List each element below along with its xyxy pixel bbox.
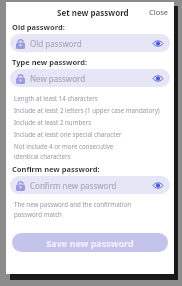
staticText: Include at least 2 numbers (14, 118, 92, 126)
staticText: Close (149, 7, 169, 17)
staticText: The new password and the confirmation (14, 200, 132, 208)
button[interactable]: Save new password (12, 233, 168, 252)
button[interactable]: Close (144, 4, 174, 20)
staticText: Old password: (12, 22, 65, 32)
staticText: Set new password (57, 7, 129, 18)
staticText: Length at least 14 characters (14, 94, 98, 102)
button[interactable]: Show password (152, 37, 164, 49)
staticText: Include at least 2 letters (1 upper case… (14, 106, 160, 114)
staticText: password match (14, 210, 62, 218)
button[interactable]: New password (10, 69, 170, 87)
staticText: Confirm new password (30, 180, 117, 191)
button[interactable]: Confirm new password (10, 176, 170, 194)
staticText: Type new password: (12, 57, 88, 67)
staticText: Save new password (46, 237, 134, 249)
staticText: Confirm new password: (12, 164, 100, 174)
staticText: Not include 4 or more consecutive (14, 142, 114, 150)
staticText: identical characters (14, 152, 71, 160)
staticText: Include at least one special character (14, 130, 122, 138)
button[interactable]: Old password (10, 34, 170, 52)
staticText: New password (30, 73, 86, 84)
button[interactable]: Show password (152, 179, 164, 191)
staticText: Old password (30, 38, 82, 49)
button[interactable]: Show password (152, 72, 164, 84)
